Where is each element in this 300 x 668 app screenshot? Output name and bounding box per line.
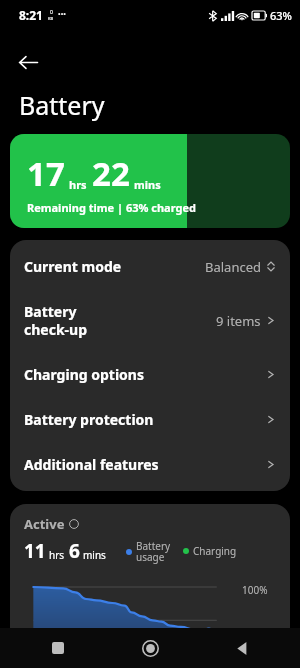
button[interactable]: Home bbox=[132, 630, 168, 666]
button[interactable]: Battery protection bbox=[10, 397, 290, 442]
staticText: Active bbox=[24, 515, 65, 533]
staticText: Battery bbox=[19, 88, 105, 122]
staticText: Charging bbox=[193, 544, 237, 558]
staticText: 6 bbox=[69, 538, 80, 564]
staticText: hrs bbox=[69, 177, 87, 192]
staticText: mins bbox=[134, 177, 161, 192]
button[interactable]: Charging options bbox=[10, 352, 290, 397]
staticText: 22 bbox=[92, 151, 130, 196]
button[interactable]: Current mode bbox=[10, 244, 290, 289]
button[interactable]: 17 bbox=[10, 134, 290, 228]
button[interactable]: Back bbox=[8, 42, 48, 82]
staticText: Battery usage bbox=[136, 539, 171, 564]
button[interactable]: Additional features bbox=[10, 442, 290, 487]
staticText: 0 bbox=[50, 9, 53, 16]
staticText: Balanced bbox=[205, 258, 261, 276]
staticText: hrs bbox=[49, 548, 65, 562]
staticText: ••• bbox=[58, 10, 66, 20]
button[interactable]: Battery check-up bbox=[10, 289, 290, 352]
staticText: 100% bbox=[242, 583, 268, 597]
staticText: 11 bbox=[24, 538, 46, 564]
staticText: Battery protection bbox=[24, 410, 154, 429]
staticText: 9 items bbox=[216, 312, 261, 330]
button[interactable]: Active bbox=[10, 504, 290, 668]
button[interactable]: Recent apps bbox=[40, 630, 76, 666]
staticText: Additional features bbox=[24, 455, 159, 474]
staticText: Battery check-up bbox=[24, 302, 88, 339]
staticText: Charging options bbox=[24, 365, 144, 384]
button[interactable]: Back bbox=[224, 630, 260, 666]
staticText: 17 bbox=[27, 151, 65, 196]
staticText: 8:21 bbox=[19, 7, 43, 23]
staticText: Remaining time | 63% charged bbox=[27, 200, 196, 215]
staticText: 63% bbox=[270, 8, 292, 23]
staticText: Current mode bbox=[24, 257, 122, 276]
staticText: 75% bbox=[242, 627, 262, 641]
staticText: mins bbox=[83, 548, 106, 562]
staticText: KB bbox=[48, 16, 54, 21]
